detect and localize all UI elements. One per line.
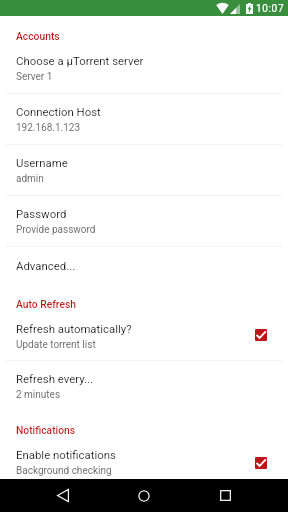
button[interactable]: Enable notifications (0, 437, 288, 479)
button[interactable]: Refresh every... (0, 361, 288, 412)
button[interactable]: Back (40, 479, 86, 512)
staticText: Password (16, 207, 67, 220)
button[interactable]: Choose a µTorrent server (0, 43, 288, 94)
button[interactable]: Username (0, 145, 288, 196)
staticText: Refresh every... (16, 372, 94, 385)
button[interactable]: Enable notifications (250, 448, 272, 478)
staticText: Enable notifications (16, 448, 116, 461)
staticText: Auto Refresh (16, 298, 76, 310)
staticText: Username (16, 156, 68, 169)
staticText: 10:07 (256, 3, 285, 15)
staticText: Connection Host (16, 105, 101, 118)
staticText: Refresh automatically? (16, 322, 132, 335)
staticText: Server 1 (16, 71, 53, 83)
staticText: Background checking (16, 465, 112, 477)
staticText: Accounts (16, 30, 60, 42)
button[interactable]: Refresh automatically? (250, 320, 272, 350)
staticText: Choose a µTorrent server (16, 54, 144, 67)
button[interactable]: Home (121, 479, 167, 512)
staticText: Provide password (16, 224, 96, 236)
button[interactable]: Advanced... (0, 247, 288, 286)
staticText: admin (16, 173, 44, 185)
button[interactable]: Connection Host (0, 94, 288, 145)
staticText: Advanced... (16, 259, 76, 272)
button[interactable]: Refresh automatically? (0, 311, 288, 361)
button[interactable]: Password (0, 196, 288, 247)
staticText: Notifications (16, 424, 76, 436)
staticText: Update torrent list (16, 339, 96, 351)
button[interactable]: Recent apps (202, 479, 248, 512)
staticText: 2 minutes (16, 389, 61, 401)
staticText: 192.168.1.123 (16, 122, 81, 134)
